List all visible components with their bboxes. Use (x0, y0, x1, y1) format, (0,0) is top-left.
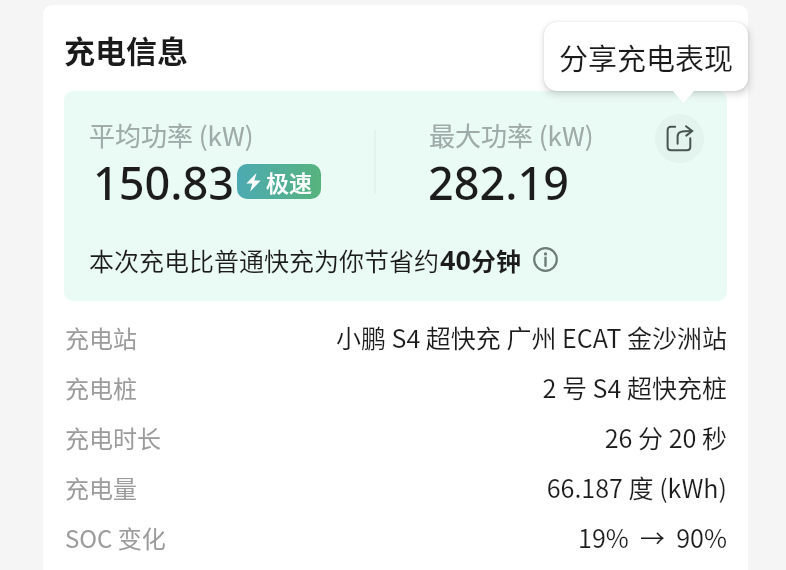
staticText: 最大功率 (kW) (429, 116, 594, 154)
staticText: 小鹏 S4 超快充 广州 ECAT 金沙洲站 (149, 319, 727, 355)
staticText: 66.187 度 (kWh) (149, 469, 727, 505)
button[interactable]: 充电站 (43, 312, 748, 362)
staticText: 150.83 (93, 152, 234, 213)
button[interactable]: SOC 变化 (43, 512, 748, 562)
button[interactable]: 充电时长 (43, 412, 748, 462)
button[interactable]: 充电量 (43, 462, 748, 512)
staticText: 282.19 (428, 152, 569, 213)
staticText: 40 (440, 241, 471, 278)
button[interactable]: 充电桩 (43, 362, 748, 412)
staticText: 分享充电表现 (559, 36, 734, 78)
staticText: 19% → 90% (178, 519, 727, 555)
staticText: 充电量 (65, 470, 137, 505)
staticText: 极速 (266, 165, 312, 198)
button[interactable]: 极速 (237, 164, 321, 199)
staticText: 充电站 (65, 320, 137, 355)
staticText: 充电信息 (64, 27, 188, 72)
staticText: 充电桩 (65, 370, 137, 405)
staticText: SOC 变化 (65, 520, 166, 555)
button[interactable]: 分享充电表现 (544, 22, 748, 91)
staticText: 26 分 20 秒 (173, 419, 727, 455)
button[interactable]: 分享充电表现 (655, 114, 704, 163)
staticText: 充电时长 (65, 420, 161, 455)
staticText: 本次充电比普通快充为你节省约 (89, 242, 440, 278)
staticText: 平均功率 (kW) (89, 116, 254, 154)
staticText: 分钟 (471, 242, 522, 278)
staticText: 2 号 S4 超快充桩 (149, 369, 727, 405)
